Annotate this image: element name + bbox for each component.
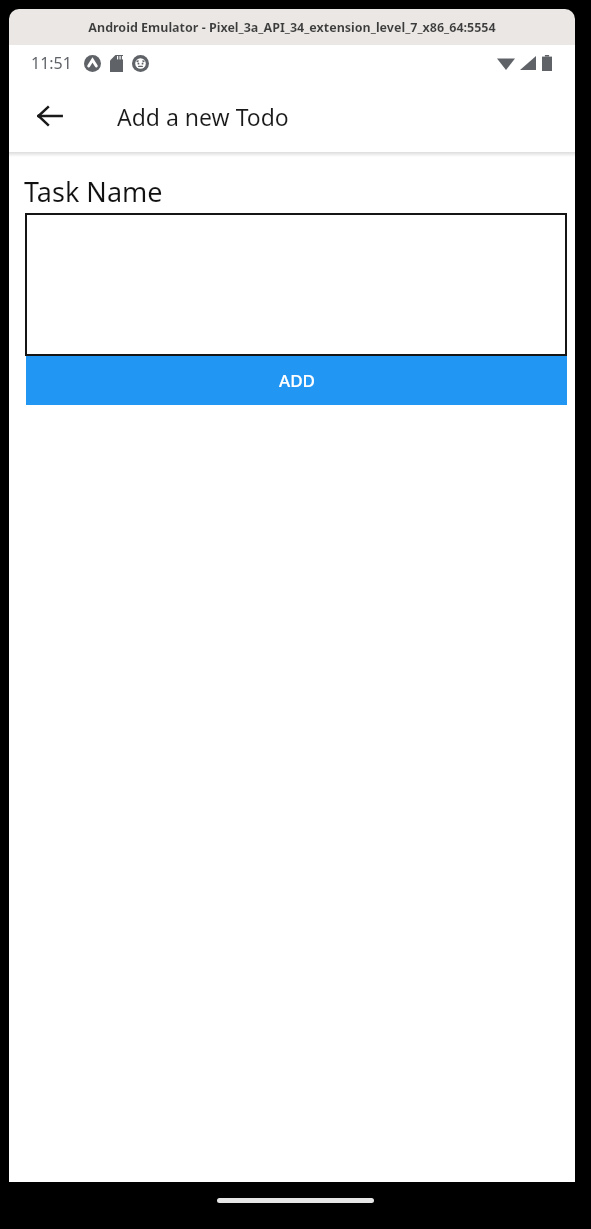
button[interactable] <box>25 213 567 356</box>
staticText: Android Emulator - Pixel_3a_API_34_exten… <box>88 19 496 36</box>
staticText: ADD <box>279 369 315 392</box>
staticText: Task Name <box>24 173 163 210</box>
staticText: Add a new Todo <box>117 101 289 132</box>
staticText: 11:51 <box>31 52 72 74</box>
button[interactable]: Back <box>26 92 74 140</box>
button[interactable]: ADD <box>26 356 567 405</box>
